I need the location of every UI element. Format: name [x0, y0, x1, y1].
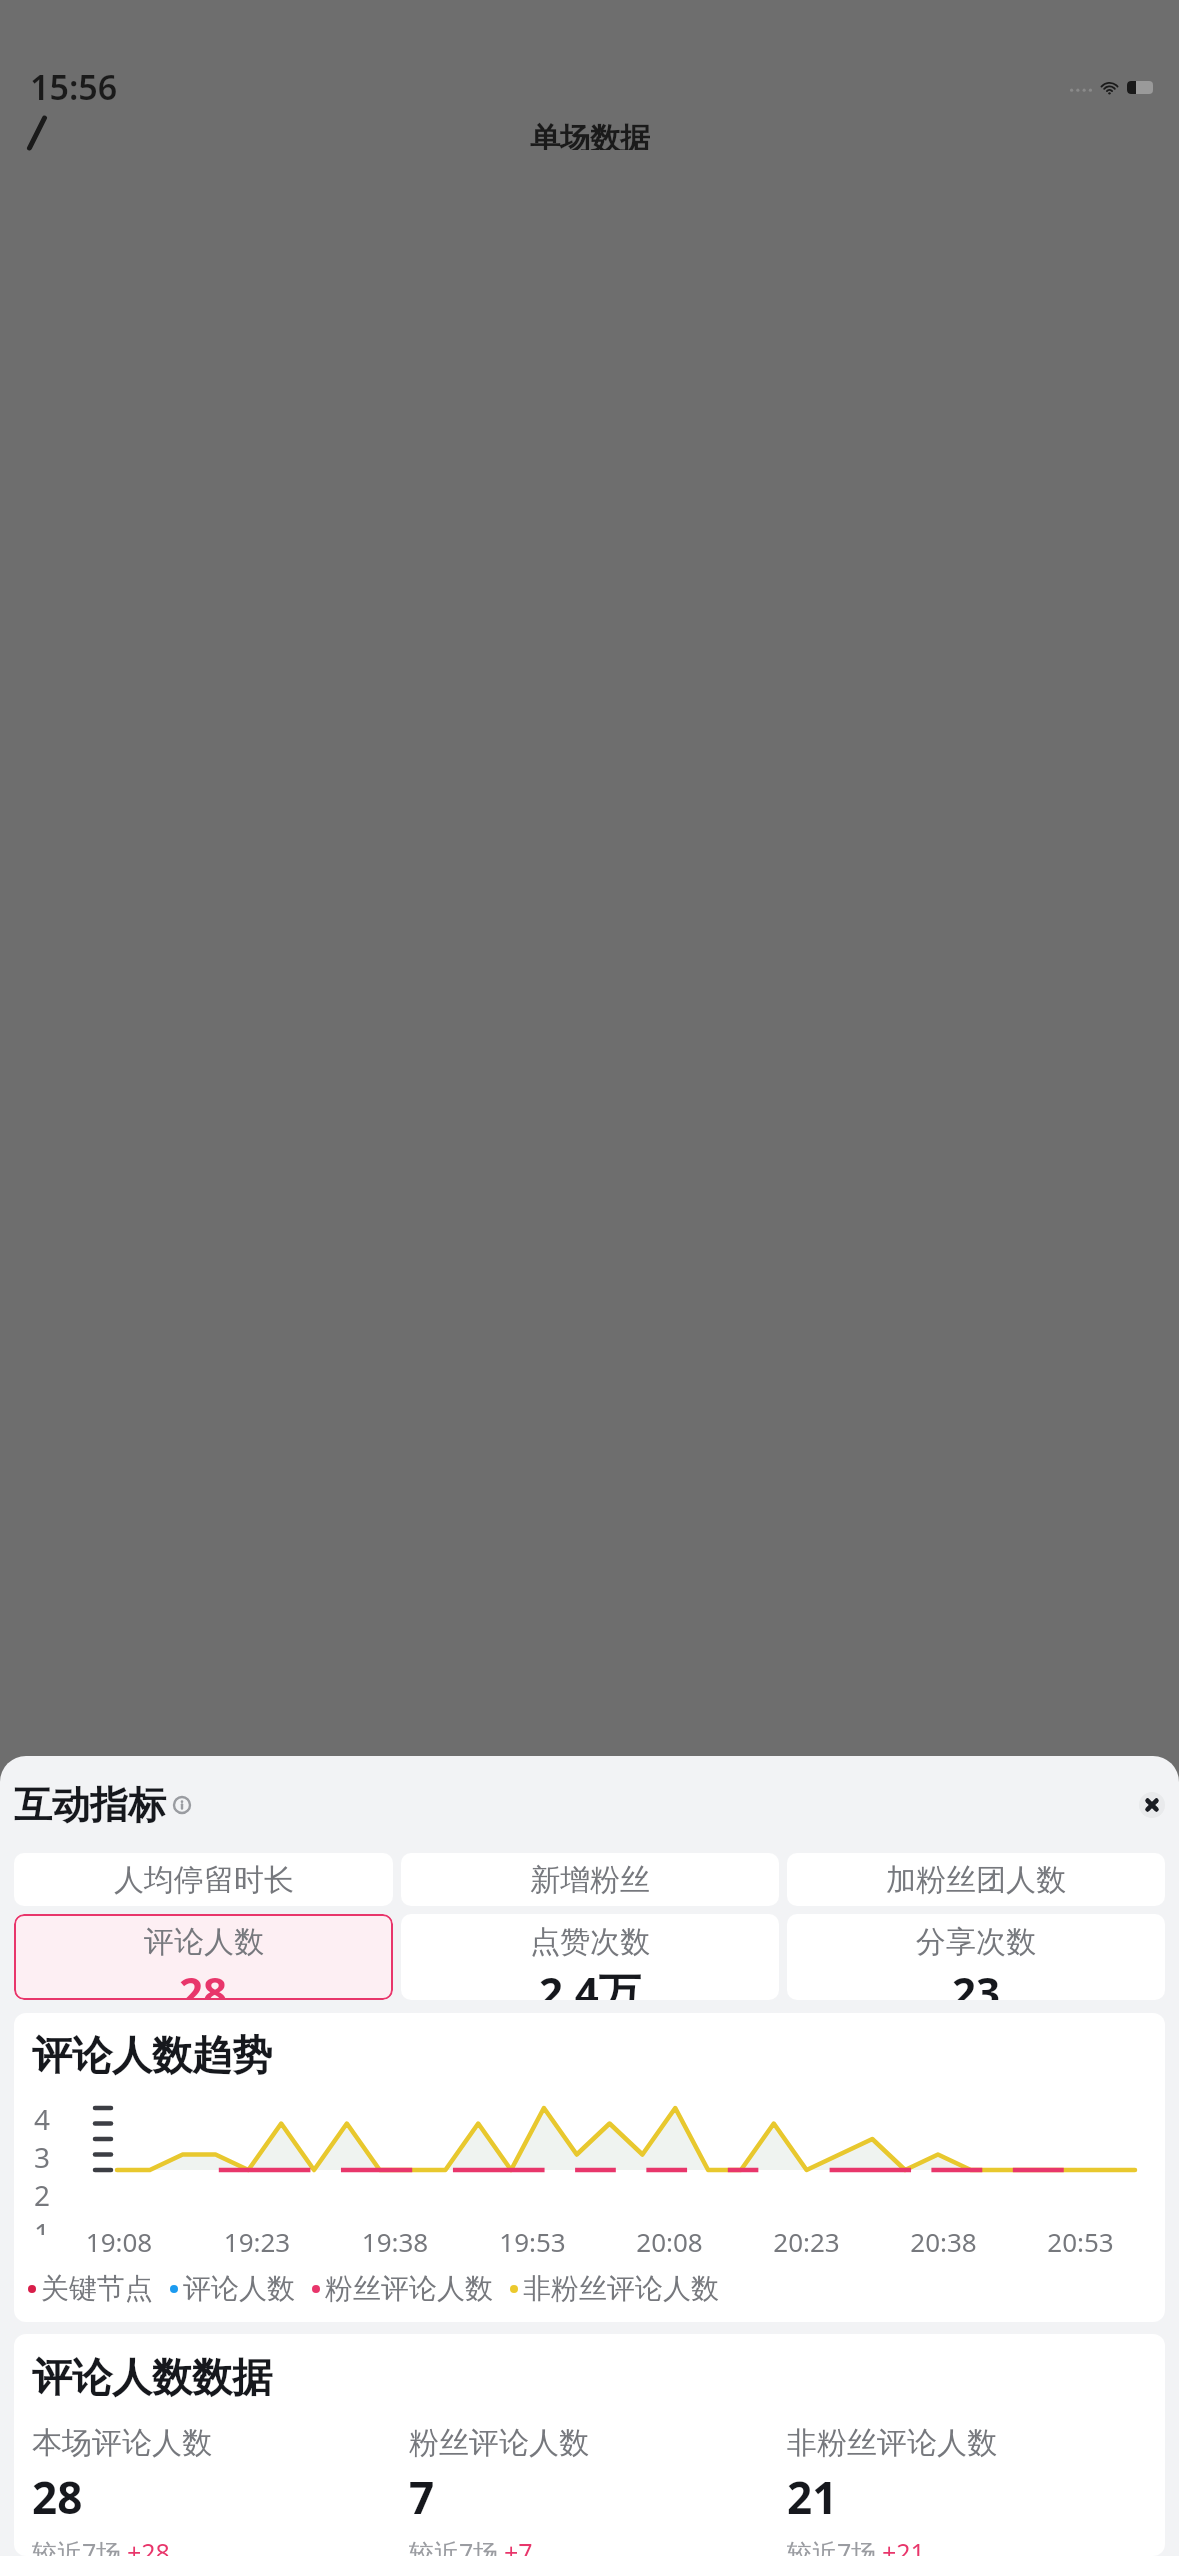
staticText: 19:08: [50, 2224, 188, 2259]
staticText: 较近7场: [787, 2535, 877, 2556]
button[interactable]: 评论人数: [14, 1914, 393, 2000]
staticText: 21: [787, 2467, 838, 2527]
staticText: 20:38: [875, 2224, 1012, 2259]
staticText: 评论人数: [144, 1923, 264, 1961]
staticText: 较近7场: [409, 2535, 499, 2556]
staticText: 人均停留时长: [114, 1861, 294, 1899]
staticText: 单场数据: [530, 120, 650, 150]
staticText: 较近7场: [32, 2535, 122, 2556]
staticText: +7: [504, 2535, 533, 2556]
button[interactable]: Info: [173, 1796, 191, 1814]
staticText: 20:08: [601, 2224, 738, 2259]
staticText: 非粉丝评论人数: [523, 2271, 719, 2306]
staticText: 粉丝评论人数: [325, 2271, 493, 2306]
staticText: 28: [179, 1963, 228, 2000]
staticText: 粉丝评论人数: [409, 2424, 589, 2462]
button[interactable]: 分享次数: [787, 1914, 1165, 2000]
button[interactable]: 人均停留时长: [14, 1853, 393, 1906]
staticText: 互动指标: [14, 1781, 166, 1829]
staticText: 评论人数数据: [32, 2352, 272, 2402]
staticText: 点赞次数: [530, 1923, 650, 1961]
staticText: 4: [34, 2100, 51, 2138]
staticText: 20:23: [738, 2224, 875, 2259]
staticText: 评论人数: [183, 2271, 295, 2306]
staticText: +28: [127, 2535, 170, 2556]
staticText: 15:56: [30, 64, 118, 110]
staticText: 23: [952, 1963, 1001, 2000]
button[interactable]: 点赞次数: [401, 1914, 779, 2000]
staticText: 7: [409, 2467, 435, 2527]
staticText: 新增粉丝: [530, 1861, 650, 1899]
button[interactable]: Close: [1139, 1792, 1165, 1818]
staticText: 28: [32, 2467, 83, 2527]
staticText: 本场评论人数: [32, 2424, 212, 2462]
staticText: 分享次数: [916, 1923, 1036, 1961]
staticText: 加粉丝团人数: [886, 1861, 1066, 1899]
staticText: 3: [34, 2138, 51, 2176]
staticText: 1: [34, 2214, 51, 2235]
staticText: 2: [34, 2176, 51, 2214]
button[interactable]: 加粉丝团人数: [787, 1853, 1165, 1906]
staticText: 20:53: [1012, 2224, 1149, 2259]
staticText: 19:38: [326, 2224, 464, 2259]
staticText: 2.4万: [539, 1963, 641, 2000]
staticText: +21: [882, 2535, 925, 2556]
button[interactable]: 新增粉丝: [401, 1853, 779, 1906]
staticText: 19:23: [188, 2224, 326, 2259]
staticText: 19:53: [464, 2224, 601, 2259]
staticText: 非粉丝评论人数: [787, 2424, 997, 2462]
staticText: 评论人数趋势: [32, 2030, 272, 2080]
staticText: 关键节点: [41, 2271, 153, 2306]
